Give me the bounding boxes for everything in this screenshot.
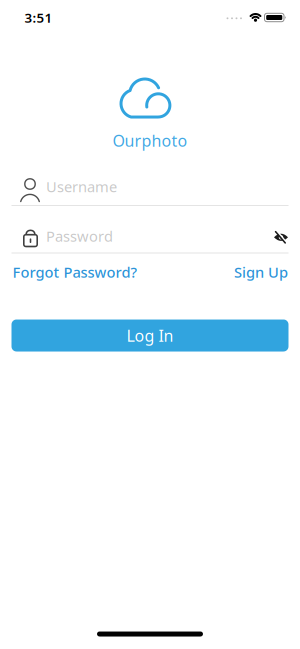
staticText: Password — [11, 217, 115, 247]
staticText: Forgot Password? — [12, 262, 137, 282]
button[interactable]: Log In — [11, 319, 288, 351]
button[interactable]: Sign Up — [168, 262, 288, 282]
staticText: Password — [46, 226, 113, 246]
button[interactable]: Show password — [269, 225, 293, 249]
staticText: Sign Up — [234, 262, 288, 282]
staticText: Ourphoto — [112, 130, 187, 151]
staticText: Username — [46, 177, 117, 196]
staticText: Username — [11, 171, 122, 201]
staticText: Log In — [126, 325, 173, 346]
staticText: 3:51 — [24, 9, 52, 26]
secureTextField[interactable]: Password — [11, 217, 288, 247]
button[interactable]: Forgot Password? — [12, 262, 182, 282]
textField[interactable]: Username — [11, 171, 288, 201]
